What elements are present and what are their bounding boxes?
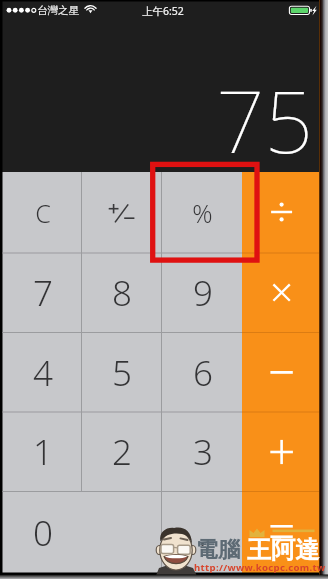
staticText: 王阿達 xyxy=(247,535,319,565)
button[interactable]: plus minus xyxy=(82,172,162,253)
button[interactable]: . xyxy=(162,492,243,573)
staticText: . xyxy=(198,509,207,557)
button[interactable]: 8 xyxy=(82,253,162,333)
staticText: 0 xyxy=(33,509,53,557)
button[interactable]: 9 xyxy=(162,253,243,333)
staticText: 3 xyxy=(193,428,213,476)
button[interactable]: Add xyxy=(242,412,321,492)
staticText: http://www.kocpc.com.tw xyxy=(194,561,326,574)
button[interactable]: 3 xyxy=(162,412,243,492)
staticText: 1 xyxy=(33,428,53,476)
staticText: 75 xyxy=(216,62,313,162)
button[interactable]: C xyxy=(3,172,82,253)
button[interactable]: 4 xyxy=(3,333,82,413)
staticText: 9 xyxy=(193,269,213,317)
button[interactable]: 1 xyxy=(3,412,82,492)
button[interactable]: 7 xyxy=(3,253,82,333)
staticText: 上午6:52 xyxy=(142,4,184,18)
staticText: C xyxy=(35,196,51,230)
button[interactable]: % xyxy=(162,172,243,253)
staticText: 5 xyxy=(112,349,132,397)
staticText: 4 xyxy=(33,349,53,397)
button[interactable]: 6 xyxy=(162,333,243,413)
button[interactable]: 0 xyxy=(3,492,162,573)
staticText: 7 xyxy=(33,269,53,317)
button[interactable]: Subtract xyxy=(242,333,321,413)
button[interactable]: Equals xyxy=(242,492,321,573)
button[interactable]: 5 xyxy=(82,333,162,413)
staticText: 電腦 xyxy=(196,536,240,564)
button[interactable]: Divide xyxy=(242,172,321,253)
staticText: 台灣之星 xyxy=(37,4,79,17)
staticText: 6 xyxy=(193,349,213,397)
staticText: 8 xyxy=(112,269,132,317)
button[interactable]: Multiply xyxy=(242,253,321,333)
staticText: 2 xyxy=(112,428,132,476)
staticText: % xyxy=(192,196,213,230)
button[interactable]: 2 xyxy=(82,412,162,492)
